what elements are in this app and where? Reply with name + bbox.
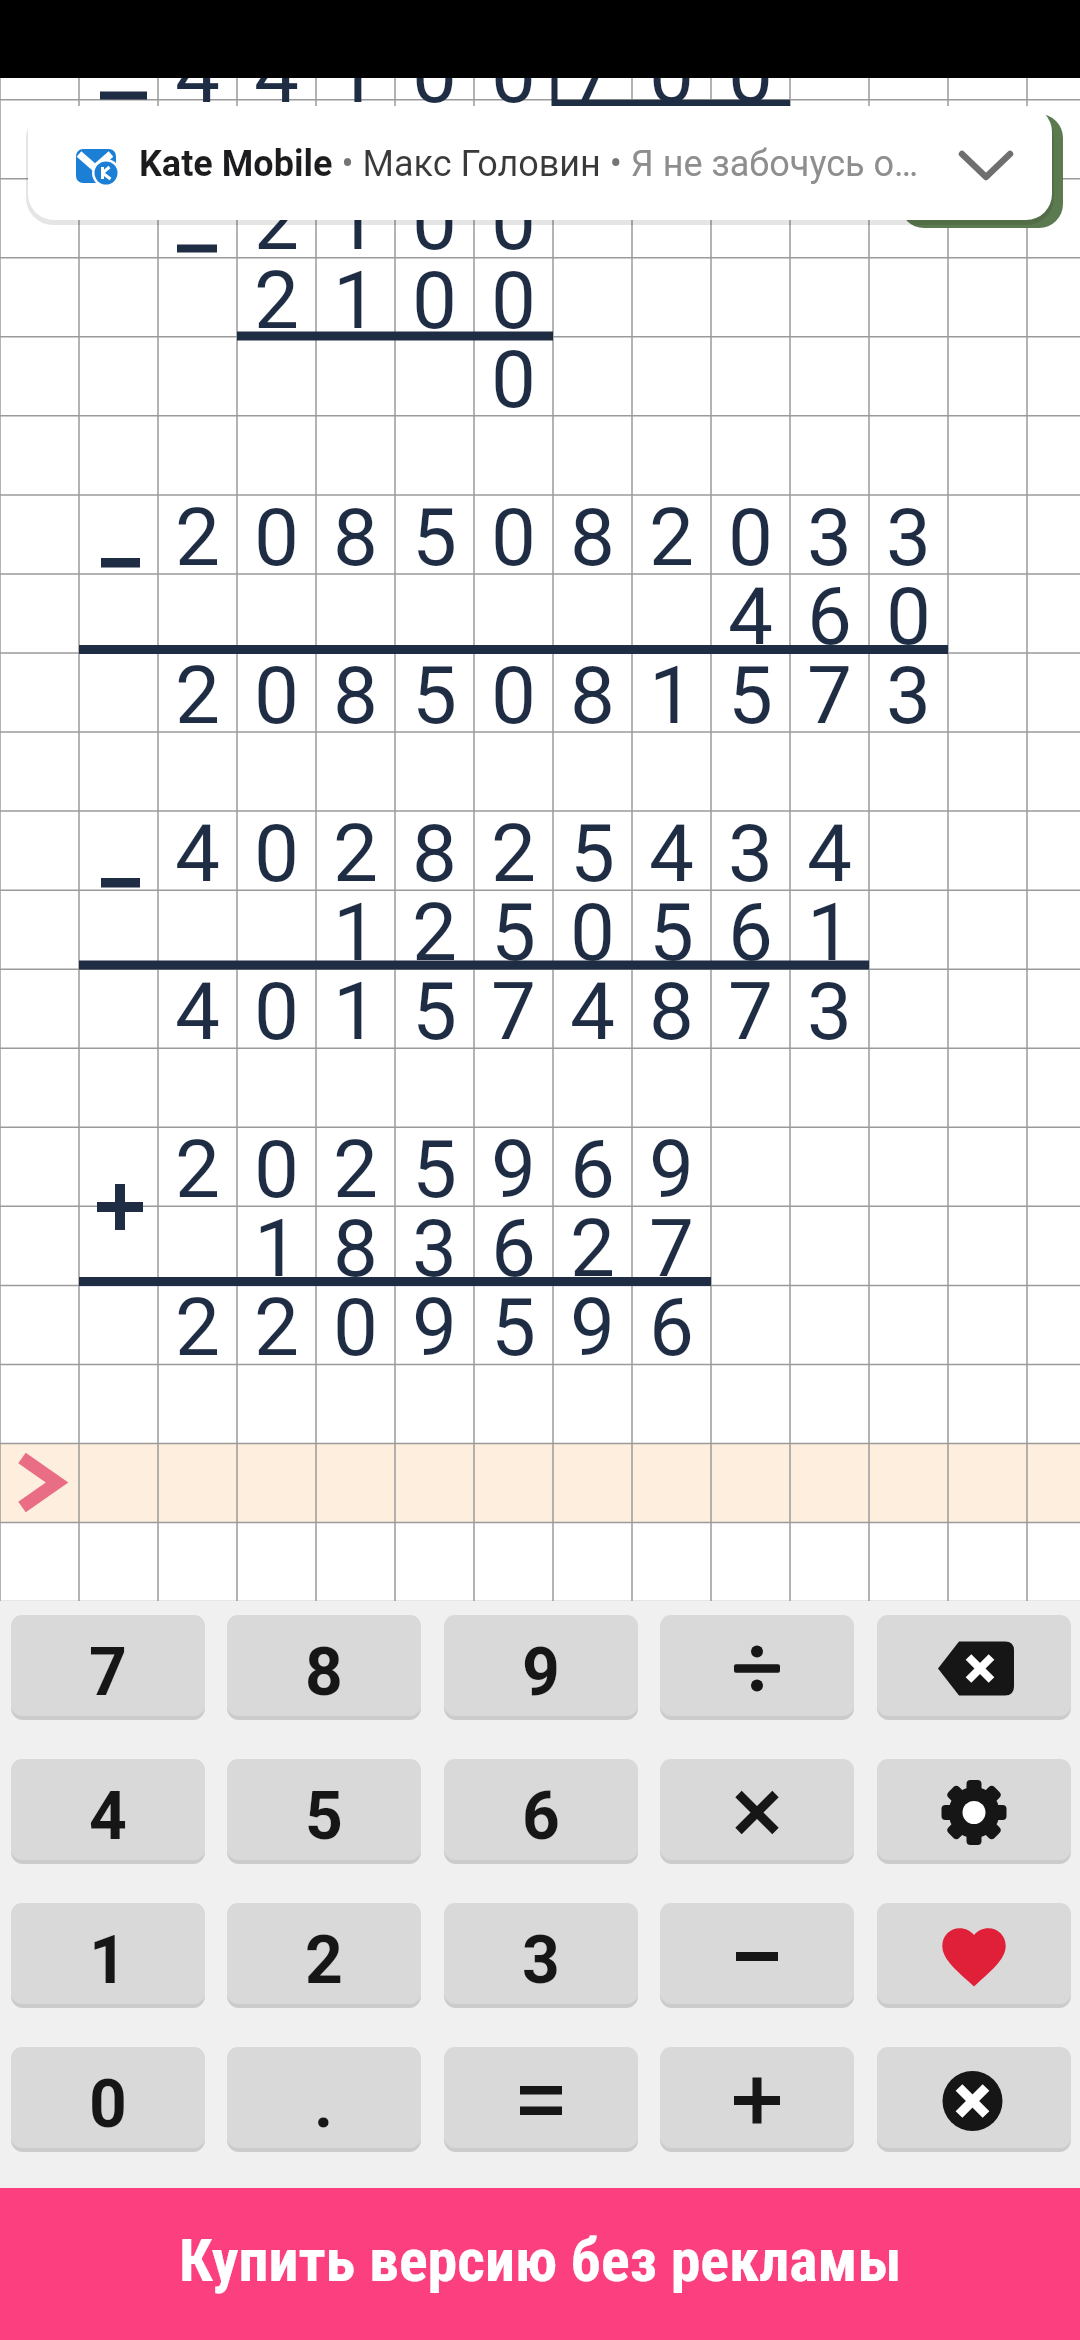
staticText: 1 [807,886,852,965]
staticText: 1 [333,28,378,107]
staticText: 1 [333,886,378,965]
staticText: Купить версию без рекламы [179,2225,902,2295]
staticText: 8 [333,491,378,570]
button[interactable] [660,1759,854,1860]
staticText: 5 [570,807,615,886]
staticText: 2 [254,1281,299,1360]
staticText: 5 [305,1778,343,1855]
staticText: 9 [649,1123,694,1202]
staticText: 3 [886,649,931,728]
staticText: 6 [807,570,852,649]
staticText: 4 [175,965,220,1044]
staticText: 2 [175,491,220,570]
staticText: 4 [89,1778,127,1855]
button[interactable]: Kate Mobile • Макс Головин • Я не забочу… [28,106,1052,220]
button[interactable]: 1 [11,1903,205,2004]
staticText: 0 [333,1281,378,1360]
button[interactable]: 5 [227,1759,421,1860]
staticText: 5 [412,649,457,728]
button[interactable] [877,1903,1071,2004]
staticText: 5 [491,1281,536,1360]
button[interactable]: . [227,2047,421,2148]
staticText: 5 [491,886,536,965]
button[interactable]: 0 [11,2047,205,2148]
staticText: 3 [728,807,773,886]
staticText: 3 [522,1922,560,1999]
button[interactable]: 3 [444,1903,638,2004]
staticText: 0 [491,28,536,107]
staticText: 2 [254,175,299,254]
staticText: 0 [649,28,694,107]
staticText: 3 [807,965,852,1044]
staticText: 7 [89,1634,127,1711]
staticText: 2 [175,649,220,728]
staticText: 8 [333,1202,378,1281]
staticText: 1 [333,175,378,254]
staticText: 7 [491,965,536,1044]
staticText: 2 [570,1202,615,1281]
button[interactable] [660,1615,854,1716]
staticText: 5 [412,491,457,570]
staticText: 0 [491,333,536,412]
staticText: 7 [649,1202,694,1281]
staticText: 5 [728,649,773,728]
staticText: 6 [522,1778,560,1855]
staticText: 5 [412,965,457,1044]
staticText: 3 [807,491,852,570]
staticText: 6 [491,1202,536,1281]
staticText: 4 [570,965,615,1044]
staticText: 8 [333,649,378,728]
button[interactable]: 8 [227,1615,421,1716]
staticText: 1 [649,649,694,728]
staticText: 9 [491,1123,536,1202]
staticText: 0 [89,2066,127,2143]
staticText: . [314,2066,334,2143]
staticText: 5 [412,1123,457,1202]
staticText: 0 [412,254,457,333]
staticText: 4 [175,28,220,107]
staticText: 2 [175,1123,220,1202]
staticText: 0 [886,570,931,649]
staticText: 2 [333,1123,378,1202]
staticText: 5 [649,886,694,965]
staticText: 7 [728,965,773,1044]
staticText: 1 [89,1922,127,1999]
staticText: 8 [570,649,615,728]
staticText: 0 [254,965,299,1044]
staticText: 0 [254,491,299,570]
button[interactable] [877,1615,1071,1716]
staticText: 0 [491,254,536,333]
staticText: 1 [333,254,378,333]
staticText: 1 [333,965,378,1044]
staticText: 6 [728,886,773,965]
button[interactable] [877,1759,1071,1860]
staticText: 2 [412,886,457,965]
button[interactable] [877,2047,1071,2148]
button[interactable]: 2 [227,1903,421,2004]
button[interactable]: 4 [11,1759,205,1860]
staticText: 0 [412,175,457,254]
button[interactable]: Купить версию без рекламы [0,2188,1080,2340]
staticText: 4 [649,807,694,886]
staticText: 4 [807,807,852,886]
staticText: 0 [728,491,773,570]
staticText: 2 [333,807,378,886]
staticText: 4 [175,807,220,886]
staticText: 9 [412,1281,457,1360]
staticText: 4 [728,570,773,649]
staticText: 0 [412,28,457,107]
staticText: 9 [570,1281,615,1360]
staticText: 0 [254,649,299,728]
staticText: 2 [305,1922,343,1999]
staticText: 3 [412,1202,457,1281]
staticText: 0 [254,807,299,886]
button[interactable]: 7 [11,1615,205,1716]
staticText: 9 [522,1634,560,1711]
button[interactable]: 6 [444,1759,638,1860]
button[interactable] [660,2047,854,2148]
staticText: 2 [491,807,536,886]
button[interactable] [444,2047,638,2148]
button[interactable]: 9 [444,1615,638,1716]
button[interactable] [660,1903,854,2004]
staticText: 2 [254,254,299,333]
